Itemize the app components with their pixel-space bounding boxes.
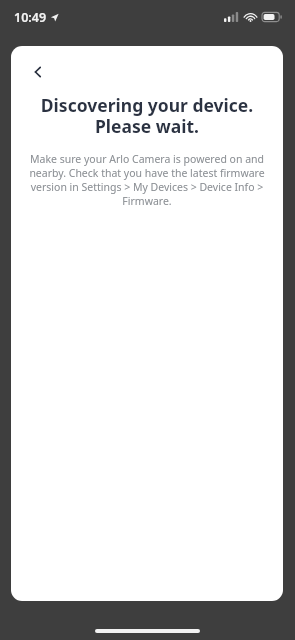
staticText: 10:49 xyxy=(14,9,47,26)
staticText: Discovering your device. Please wait. xyxy=(21,93,273,138)
staticText: Make sure your Arlo Camera is powered on… xyxy=(25,152,269,208)
button[interactable]: Back xyxy=(21,55,55,89)
